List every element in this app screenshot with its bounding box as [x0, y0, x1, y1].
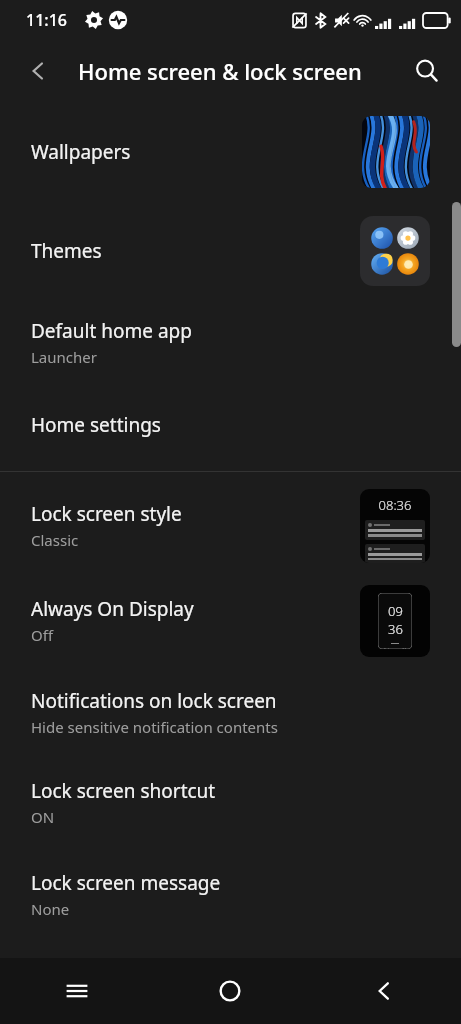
staticText: Lock screen style: [31, 501, 182, 527]
button[interactable]: Lock screen shortcut: [0, 756, 461, 848]
button[interactable]: Home: [153, 958, 307, 1024]
staticText: Home screen & lock screen: [78, 56, 362, 86]
button[interactable]: Home settings: [0, 385, 461, 465]
staticText: Default home app: [31, 318, 192, 344]
staticText: 09: [388, 602, 403, 620]
button[interactable]: Back: [307, 958, 461, 1024]
button[interactable]: Always On Display: [0, 573, 461, 668]
staticText: Wallpapers: [31, 139, 131, 165]
button[interactable]: Default home app: [0, 300, 461, 385]
staticText: Lock screen shortcut: [31, 778, 216, 804]
staticText: Notifications on lock screen: [31, 688, 277, 714]
staticText: Hide sensitive notification contents: [31, 717, 278, 737]
button[interactable]: Themes: [0, 202, 461, 300]
staticText: 08:36: [365, 496, 425, 514]
button[interactable]: Lock screen style: [0, 478, 461, 573]
staticText: ON: [31, 807, 55, 827]
button[interactable]: Back: [16, 49, 60, 93]
staticText: Launcher: [31, 347, 97, 367]
staticText: Themes: [31, 238, 102, 264]
button[interactable]: Lock screen message: [0, 848, 461, 940]
staticText: Lock screen message: [31, 870, 221, 896]
staticText: None: [31, 899, 70, 919]
staticText: 11:16: [26, 9, 67, 31]
button[interactable]: Wallpapers: [0, 102, 461, 202]
button[interactable]: Search: [405, 49, 449, 93]
staticText: Off: [31, 625, 54, 645]
staticText: February 21: [384, 647, 407, 649]
button[interactable]: Notifications on lock screen: [0, 668, 461, 756]
button[interactable]: Recent apps: [0, 958, 153, 1024]
staticText: 36: [388, 620, 403, 638]
staticText: Classic: [31, 530, 79, 550]
staticText: Home settings: [31, 412, 161, 438]
staticText: Always On Display: [31, 596, 194, 622]
